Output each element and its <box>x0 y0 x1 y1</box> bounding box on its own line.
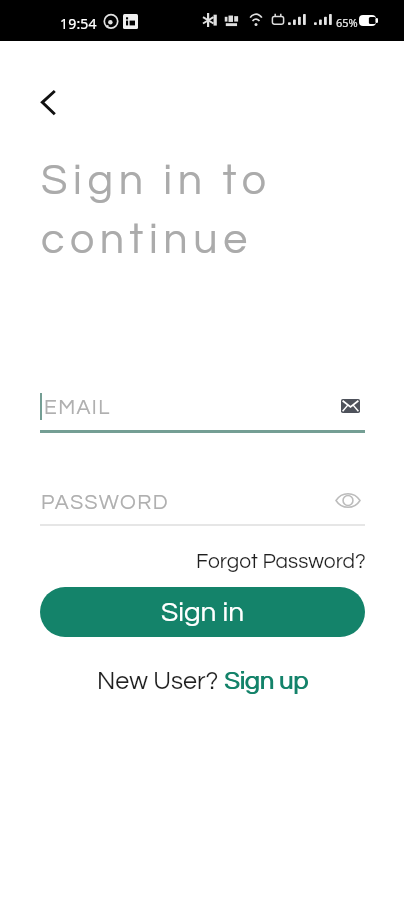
button[interactable]: Show password <box>332 484 364 516</box>
staticText: EMAIL <box>44 397 111 419</box>
button[interactable]: Forgot Password? <box>190 548 372 576</box>
button[interactable]: Email <box>337 392 364 419</box>
staticText: PASSWORD <box>41 492 169 514</box>
staticText: Forgot Password? <box>196 551 366 573</box>
staticText: 19:54 <box>60 14 97 33</box>
staticText: Sign up <box>225 668 309 694</box>
button[interactable]: Back <box>35 82 75 122</box>
button[interactable]: PASSWORD <box>40 489 365 522</box>
button[interactable]: Sign in <box>40 587 365 637</box>
staticText: New User? <box>97 668 224 694</box>
staticText: Sign in <box>161 598 245 627</box>
staticText: 65% <box>336 15 358 30</box>
button[interactable]: EMAIL <box>40 393 365 433</box>
staticText: Sign up <box>224 668 308 694</box>
button[interactable]: Sign up <box>224 668 308 694</box>
staticText: Sign in to continue <box>41 159 272 262</box>
